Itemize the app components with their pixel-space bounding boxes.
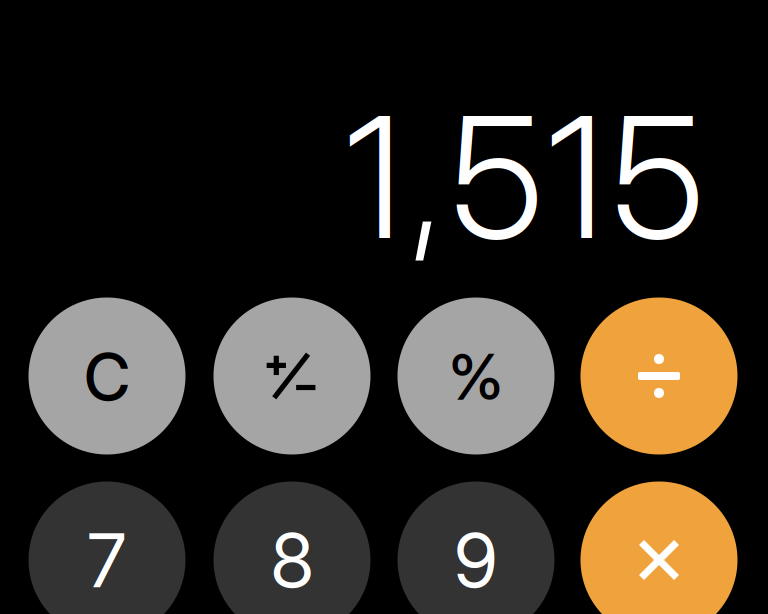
- staticText: %: [448, 339, 503, 415]
- staticText: 515: [450, 75, 704, 279]
- staticText: 7: [87, 515, 126, 605]
- button[interactable]: Divide: [580, 297, 737, 454]
- button[interactable]: 7: [28, 481, 185, 614]
- button[interactable]: 8: [213, 481, 370, 614]
- staticText: C: [84, 338, 130, 416]
- staticText: 1: [345, 75, 403, 279]
- staticText: 9: [454, 515, 498, 605]
- button[interactable]: 9: [397, 481, 554, 614]
- button[interactable]: C: [28, 297, 185, 454]
- button[interactable]: Multiply: [580, 481, 737, 614]
- staticText: 8: [270, 515, 313, 605]
- button[interactable]: %: [397, 297, 554, 454]
- button[interactable]: Plus minus: [213, 297, 370, 454]
